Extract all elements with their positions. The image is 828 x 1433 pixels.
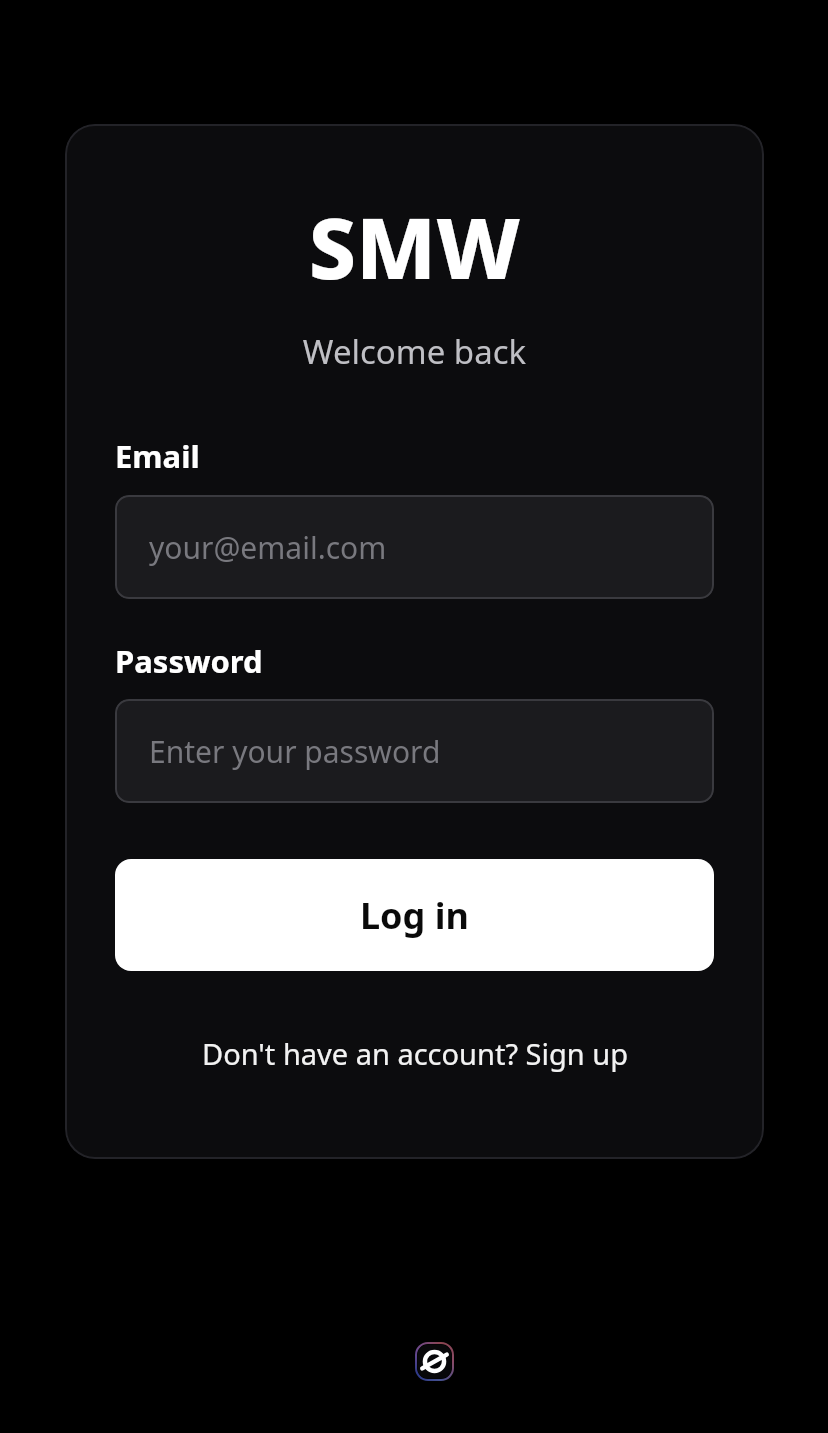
- staticText: Enter your password: [149, 731, 441, 772]
- button[interactable]: Log in: [115, 859, 714, 971]
- button[interactable]: Don't have an account? Sign up: [115, 1034, 714, 1073]
- staticText: Don't have an account? Sign up: [202, 1034, 628, 1073]
- staticText: Email: [115, 435, 200, 477]
- staticText: Welcome back: [115, 329, 714, 374]
- button[interactable]: your@email.com: [115, 495, 714, 599]
- staticText: SMW: [115, 189, 714, 303]
- staticText: Password: [115, 640, 263, 682]
- staticText: Log in: [360, 891, 469, 940]
- staticText: your@email.com: [149, 527, 387, 568]
- button[interactable]: Enter your password: [115, 699, 714, 803]
